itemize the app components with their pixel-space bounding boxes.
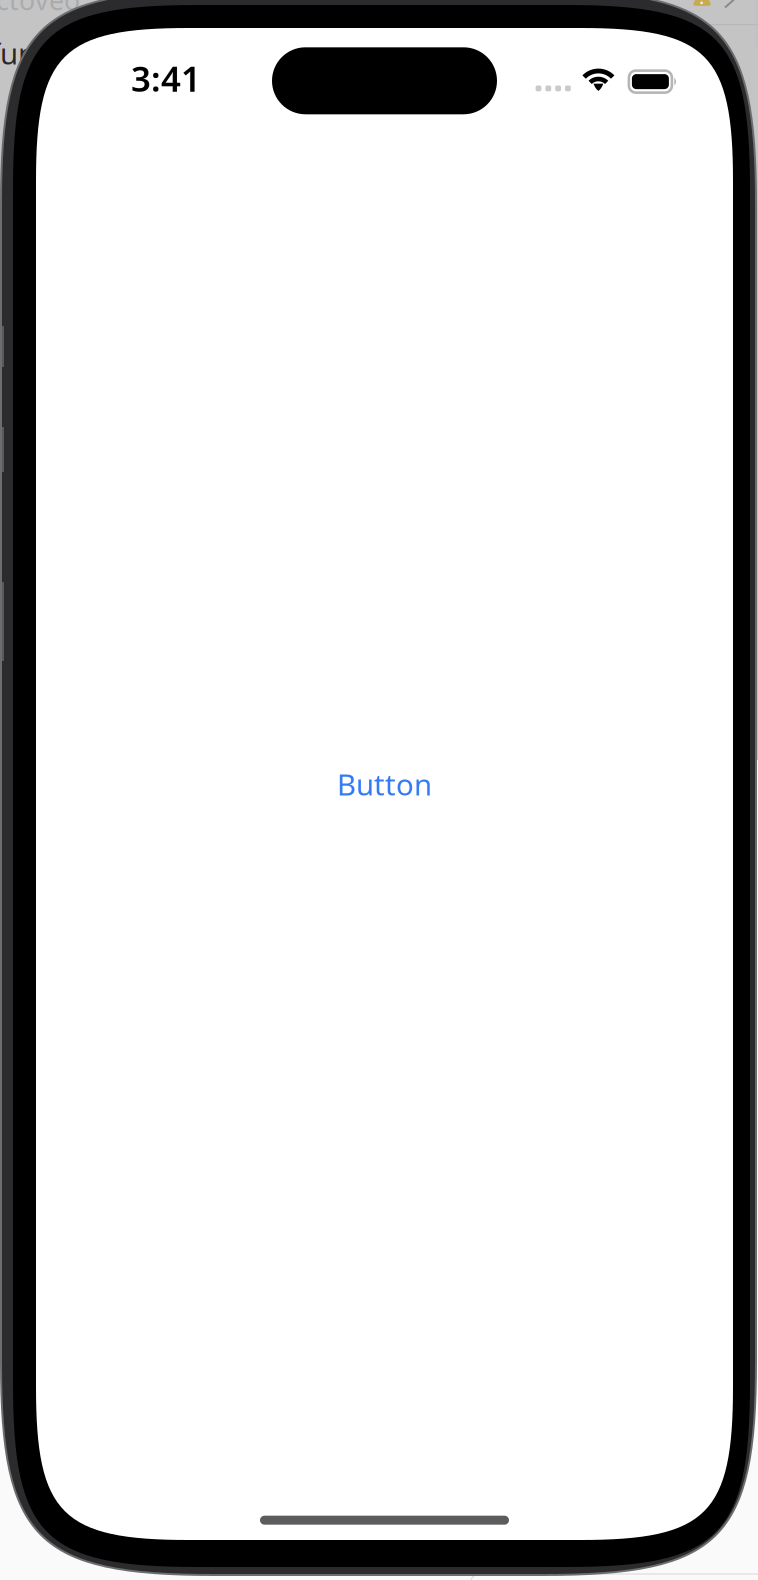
staticText: fun — [0, 33, 36, 72]
staticText: Button — [337, 764, 432, 803]
button[interactable]: Button — [337, 764, 432, 803]
staticText: ctoveo — [0, 0, 80, 18]
staticText: 3:41 — [131, 55, 201, 101]
